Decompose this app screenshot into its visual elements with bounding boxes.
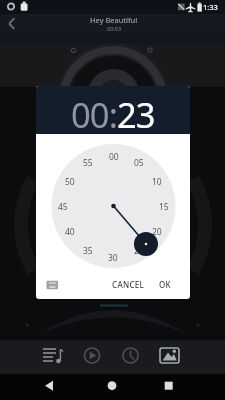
staticText: 45 — [58, 201, 68, 211]
staticText: 35 — [83, 245, 93, 255]
staticText: 25 — [134, 245, 144, 255]
staticText: 00:03 — [107, 25, 122, 32]
staticText: Hey Beautiful — [90, 15, 138, 25]
button[interactable] — [100, 376, 124, 398]
staticText: CANCEL — [112, 279, 145, 290]
button[interactable] — [44, 278, 60, 292]
staticText: 00 — [109, 151, 119, 161]
staticText: 30 — [108, 252, 118, 262]
button[interactable] — [37, 376, 61, 398]
button[interactable] — [80, 344, 104, 368]
staticText: 15 — [159, 201, 169, 211]
staticText: 40 — [65, 226, 75, 236]
staticText: 00:23 — [71, 91, 155, 131]
button[interactable] — [156, 376, 180, 398]
button[interactable] — [39, 344, 65, 368]
button[interactable]: OK — [152, 276, 178, 292]
staticText: 55 — [83, 157, 93, 167]
button[interactable]: CANCEL — [106, 276, 150, 292]
staticText: 20 — [152, 226, 162, 236]
staticText: 10 — [152, 176, 162, 186]
staticText: 05 — [134, 157, 144, 167]
button[interactable] — [118, 344, 142, 368]
button[interactable] — [157, 344, 182, 368]
staticText: 50 — [65, 176, 75, 186]
staticText: OK — [159, 279, 171, 290]
button[interactable] — [3, 15, 21, 33]
staticText: 1:33 — [203, 2, 218, 12]
